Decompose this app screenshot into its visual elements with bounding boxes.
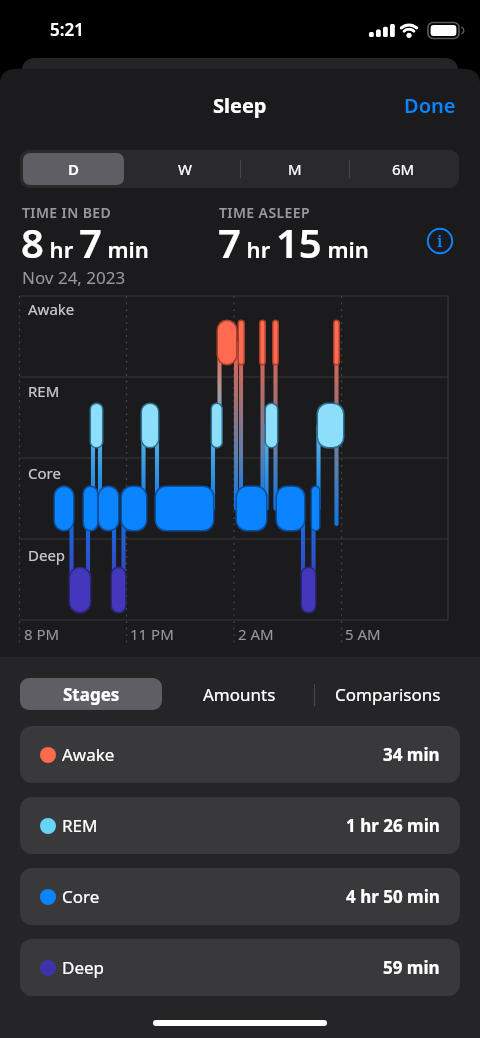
staticText: Sleep — [213, 92, 267, 118]
staticText: TIME IN BED — [22, 203, 112, 222]
staticText: 11 PM — [130, 624, 174, 644]
staticText: Stages — [63, 683, 120, 706]
staticText: 5 AM — [345, 624, 381, 644]
button[interactable]: Core — [20, 868, 460, 925]
button[interactable]: Stages — [20, 678, 162, 710]
button[interactable]: Done — [396, 88, 466, 122]
staticText: REM — [62, 814, 98, 837]
staticText: 5:21 — [50, 18, 84, 41]
staticText: Awake — [28, 299, 75, 319]
staticText: 8 PM — [24, 624, 60, 644]
staticText: Core — [62, 885, 100, 908]
button[interactable]: REM — [20, 797, 460, 854]
staticText: Done — [404, 92, 456, 119]
staticText: 6M — [392, 159, 415, 179]
button[interactable]: D — [23, 153, 124, 185]
staticText: 8 hr 7 min — [21, 215, 149, 269]
button[interactable]: i — [424, 225, 456, 257]
staticText: REM — [28, 381, 60, 401]
staticText: 1 hr 26 min — [346, 814, 440, 837]
staticText: 34 min — [383, 743, 440, 766]
button[interactable]: 6M — [349, 151, 458, 187]
button[interactable]: M — [240, 151, 349, 187]
staticText: Amounts — [203, 683, 276, 706]
staticText: D — [68, 159, 79, 179]
staticText: i — [437, 230, 443, 252]
staticText: 7 hr 15 min — [218, 215, 369, 269]
button[interactable]: Comparisons — [316, 675, 460, 713]
staticText: M — [288, 159, 302, 179]
staticText: Core — [28, 463, 61, 483]
staticText: W — [178, 159, 192, 179]
button[interactable]: Awake — [20, 726, 460, 783]
button[interactable]: Amounts — [170, 675, 308, 713]
staticText: Nov 24, 2023 — [22, 266, 126, 289]
staticText: Awake — [62, 743, 115, 766]
staticText: Deep — [62, 956, 105, 979]
staticText: Deep — [28, 545, 66, 565]
staticText: 59 min — [383, 956, 440, 979]
staticText: 2 AM — [238, 624, 274, 644]
button[interactable]: W — [130, 151, 240, 187]
staticText: TIME ASLEEP — [219, 203, 310, 222]
button[interactable]: Deep — [20, 939, 460, 996]
staticText: Comparisons — [335, 683, 441, 706]
staticText: 4 hr 50 min — [346, 885, 440, 908]
